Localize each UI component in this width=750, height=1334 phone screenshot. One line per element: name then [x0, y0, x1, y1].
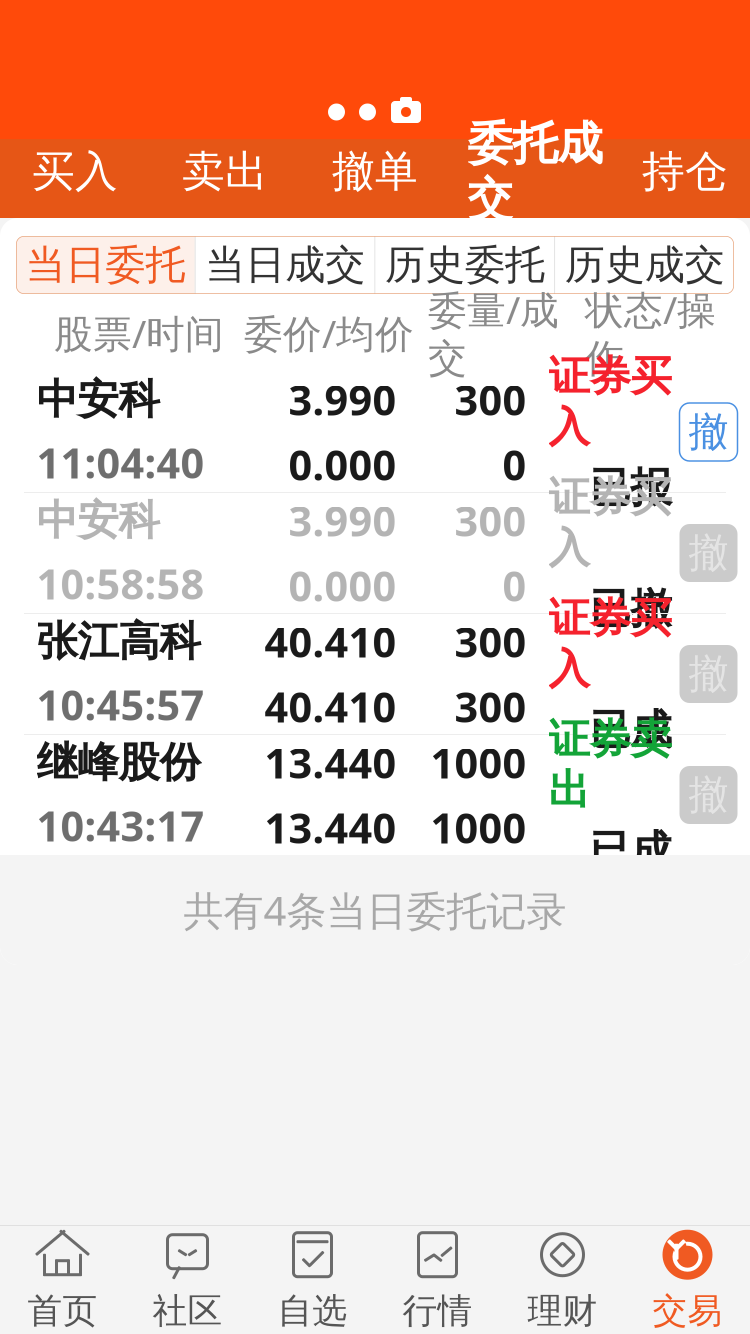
- staticText: 继峰股份: [36, 737, 200, 788]
- button[interactable]: 撤单: [300, 139, 450, 218]
- staticText: 买入: [32, 145, 118, 198]
- button[interactable]: 撤单: [679, 766, 737, 824]
- button[interactable]: 持仓: [620, 139, 750, 218]
- button[interactable]: 撤单: [679, 524, 737, 582]
- staticText: 社区: [152, 1290, 222, 1332]
- button[interactable]: 历史成交: [555, 236, 734, 294]
- staticText: 300: [454, 679, 526, 734]
- staticText: 交易: [652, 1290, 722, 1332]
- staticText: 0.000: [288, 558, 396, 613]
- button[interactable]: 自选: [250, 1226, 375, 1334]
- staticText: 状态/操作: [585, 284, 716, 382]
- staticText: 0: [502, 558, 526, 613]
- staticText: 中安科: [36, 495, 159, 546]
- staticText: 历史委托: [385, 240, 545, 289]
- button[interactable]: 委托成交: [450, 139, 620, 218]
- staticText: 委量/成交: [428, 284, 559, 382]
- staticText: 撤单: [332, 145, 418, 198]
- staticText: 证券买入: [548, 593, 671, 694]
- staticText: 撤: [688, 770, 728, 819]
- staticText: 当日委托: [25, 240, 185, 289]
- staticText: 委价/均价: [244, 307, 414, 359]
- staticText: 40.410: [264, 679, 396, 734]
- staticText: 已成: [589, 704, 671, 755]
- staticText: 当日成交: [205, 240, 365, 289]
- staticText: 中安科: [36, 374, 159, 425]
- staticText: 撤: [688, 528, 728, 577]
- button[interactable]: 当日成交: [196, 236, 375, 294]
- staticText: 1000: [430, 800, 526, 855]
- button[interactable]: 首页: [0, 1226, 125, 1334]
- button[interactable]: 卖出: [150, 139, 300, 218]
- button[interactable]: 理财: [500, 1226, 625, 1334]
- staticText: 3.990: [288, 372, 396, 427]
- staticText: 理财: [527, 1290, 597, 1332]
- button[interactable]: 撤单: [679, 645, 737, 703]
- staticText: 首页: [27, 1290, 97, 1332]
- button[interactable]: 撤单: [679, 403, 737, 461]
- staticText: 40.410: [264, 614, 396, 669]
- button[interactable]: 历史委托: [375, 236, 554, 294]
- staticText: 股票/时间: [54, 307, 224, 359]
- staticText: 卖出: [182, 145, 268, 198]
- staticText: 证券卖出: [548, 714, 671, 815]
- staticText: 1000: [430, 735, 526, 790]
- staticText: 10:43:17: [36, 798, 204, 853]
- staticText: 13.440: [264, 800, 396, 855]
- staticText: 13.440: [264, 735, 396, 790]
- button[interactable]: 行情: [375, 1226, 500, 1334]
- button[interactable]: 当日委托: [16, 236, 195, 294]
- staticText: 撤: [688, 407, 728, 456]
- button[interactable]: 买入: [0, 139, 150, 218]
- staticText: 证券买入: [548, 472, 671, 573]
- staticText: 11:04:40: [36, 435, 204, 490]
- staticText: 自选: [277, 1290, 347, 1332]
- staticText: 历史成交: [565, 240, 725, 289]
- staticText: 10:45:57: [36, 677, 204, 732]
- staticText: 300: [454, 614, 526, 669]
- staticText: 0: [502, 437, 526, 492]
- staticText: 已撤: [589, 583, 671, 634]
- staticText: 共有4条当日委托记录: [183, 883, 566, 936]
- staticText: 3.990: [288, 493, 396, 548]
- staticText: 行情: [402, 1290, 472, 1332]
- button[interactable]: 社区: [125, 1226, 250, 1334]
- button[interactable]: 交易: [625, 1226, 750, 1334]
- staticText: 300: [454, 372, 526, 427]
- staticText: 张江高科: [36, 616, 200, 667]
- staticText: 委托成交: [467, 116, 602, 227]
- staticText: 300: [454, 493, 526, 548]
- staticText: 证券买入: [548, 351, 671, 452]
- staticText: 已成: [589, 825, 671, 876]
- staticText: 已报: [589, 462, 671, 513]
- staticText: 10:58:58: [36, 556, 204, 611]
- staticText: 0.000: [288, 437, 396, 492]
- staticText: 持仓: [642, 145, 728, 198]
- staticText: 撤: [688, 649, 728, 698]
